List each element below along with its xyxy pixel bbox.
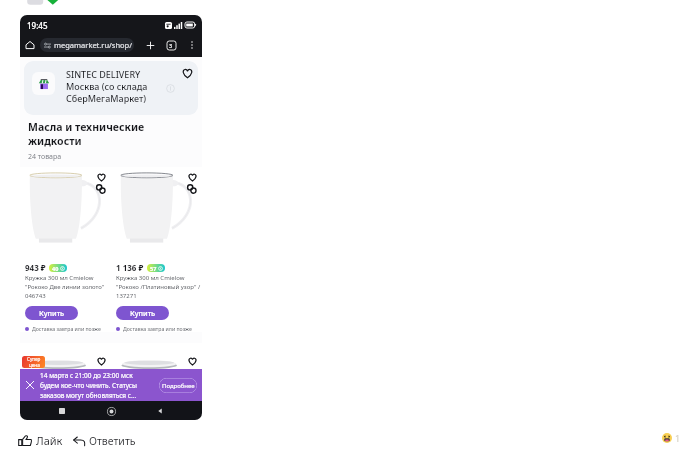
staticText: Купить: [130, 308, 156, 318]
button[interactable]: 1: [660, 430, 683, 446]
staticText: 046743: [25, 292, 46, 300]
staticText: 943 ₽: [25, 262, 46, 273]
button[interactable]: megamarket.ru/shop/: [40, 38, 134, 52]
button[interactable]: Купить: [116, 306, 169, 320]
button[interactable]: Купить: [25, 306, 78, 320]
button[interactable]: Tabs: [165, 39, 177, 51]
button[interactable]: SINTEC DELIVERY: [20, 15, 202, 420]
staticText: Ответить: [89, 434, 136, 448]
button[interactable]: Подробнее: [159, 378, 197, 393]
staticText: СберМегаМаркет): [66, 92, 147, 104]
button[interactable]: Favourite: [181, 67, 194, 80]
button[interactable]: Compare: [95, 183, 107, 195]
button[interactable]: Favourite: [186, 355, 198, 367]
staticText: Масла и технические: [28, 120, 145, 134]
staticText: 14 марта с 21:00 до 23:00 мск: [40, 371, 133, 380]
staticText: 24 товара: [28, 152, 62, 162]
button[interactable]: Home: [104, 404, 118, 418]
staticText: 40: [52, 265, 59, 272]
staticText: Москва (со склада: [66, 80, 148, 92]
button[interactable]: Info: [165, 83, 176, 94]
staticText: 3: [169, 42, 173, 49]
staticText: Купить: [39, 308, 65, 318]
staticText: 1: [675, 432, 681, 444]
button[interactable]: Favourite: [95, 355, 107, 367]
staticText: SINTEC DELIVERY: [66, 68, 141, 80]
staticText: цена: [29, 362, 40, 368]
button[interactable]: Лайк: [16, 431, 65, 450]
button[interactable]: Recent apps: [55, 404, 69, 418]
staticText: жидкости: [28, 134, 82, 148]
button[interactable]: Favourite: [20, 167, 111, 332]
staticText: Доставка завтра или позже: [123, 325, 192, 332]
staticText: "Рококо Две линии золото": [25, 283, 105, 291]
button[interactable]: Compare: [186, 183, 198, 195]
button[interactable]: More options: [186, 39, 198, 51]
staticText: 19:45: [27, 20, 48, 31]
button[interactable]: Home: [23, 38, 37, 52]
button[interactable]: Favourite: [111, 167, 202, 332]
staticText: megamarket.ru/shop/: [54, 40, 133, 50]
staticText: Подробнее: [162, 382, 195, 390]
staticText: 1 136 ₽: [116, 262, 144, 273]
staticText: заказов могут обновляться с…: [40, 391, 137, 400]
staticText: 137271: [116, 292, 137, 300]
staticText: Кружка 300 мл Cmielow: [116, 274, 185, 282]
staticText: Супер: [27, 356, 41, 362]
button[interactable]: Close: [24, 379, 36, 391]
staticText: Лайк: [36, 433, 63, 448]
staticText: будем кое-что чинить. Статусы: [40, 381, 137, 390]
staticText: Доставка завтра или позже: [32, 325, 101, 332]
staticText: 57: [150, 265, 157, 272]
button[interactable]: Ответить: [71, 432, 138, 450]
button[interactable]: Favourite: [95, 171, 107, 183]
button[interactable]: SINTEC DELIVERY: [24, 61, 198, 115]
button[interactable]: Favourite: [186, 171, 198, 183]
staticText: "Рококо /Платиновый узор" /: [116, 283, 201, 291]
button[interactable]: New tab: [144, 39, 156, 51]
button[interactable]: Back: [153, 404, 167, 418]
staticText: Кружка 300 мл Cmielow: [25, 274, 94, 282]
